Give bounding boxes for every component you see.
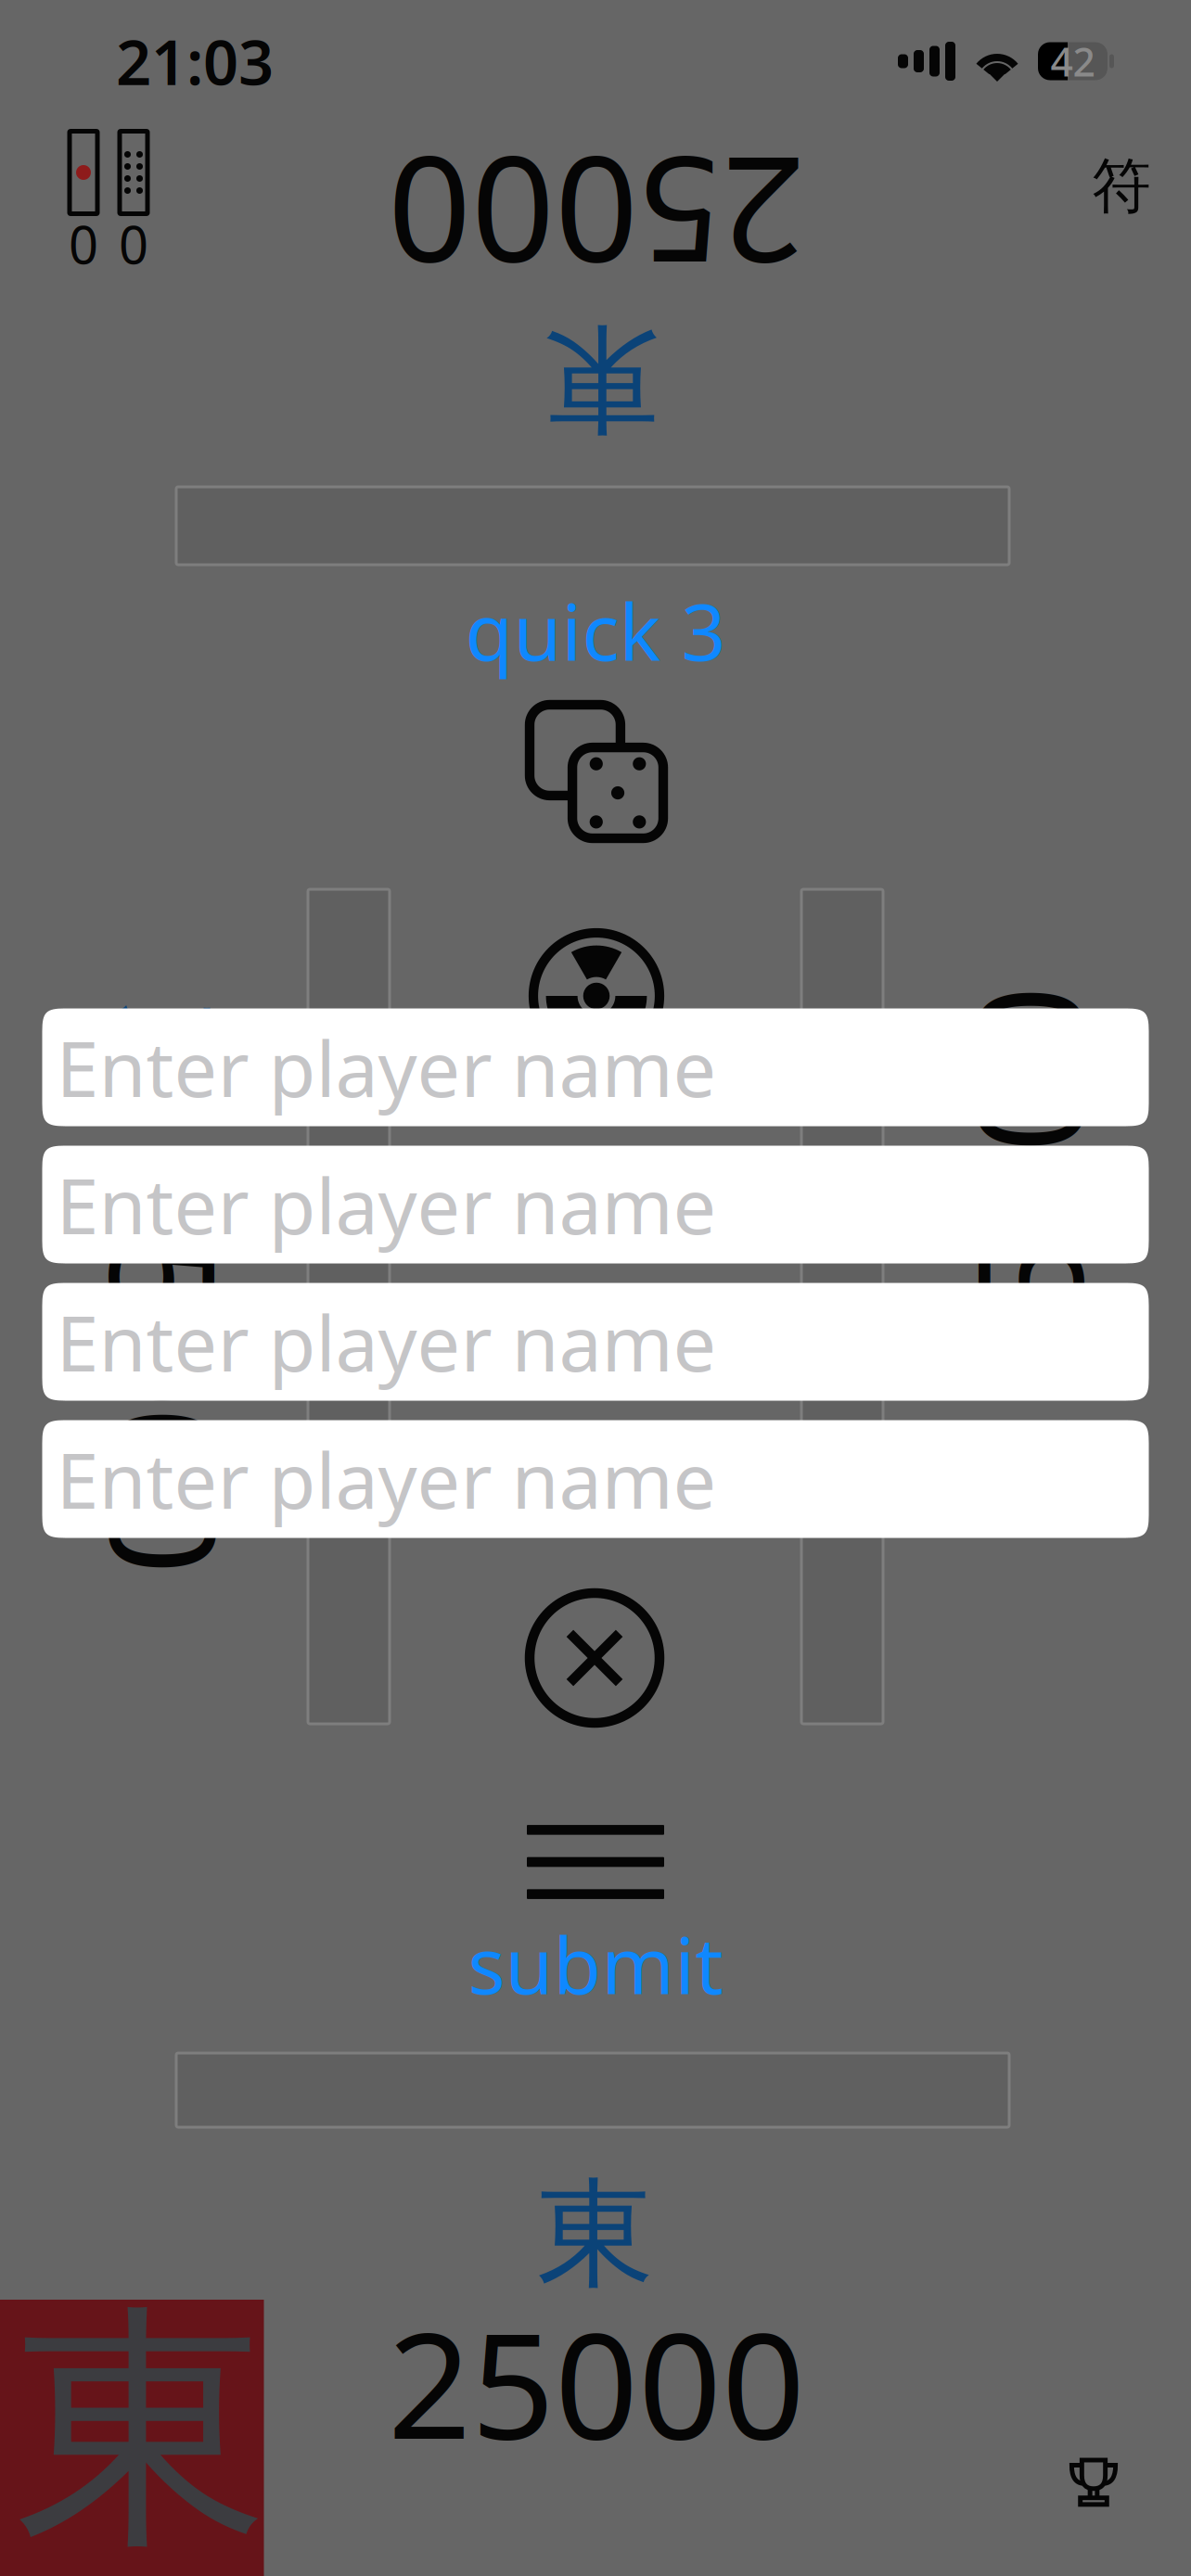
staticText: Enter player name [56, 1016, 717, 1118]
staticText: 25000 [0, 1269, 376, 1463]
button[interactable]: Enter player name [42, 1146, 1149, 1263]
button[interactable]: Fu [1077, 142, 1166, 231]
staticText: 25000 [817, 1097, 1191, 1291]
staticText: 東 [108, 990, 226, 1134]
staticText: quick 3 [465, 579, 726, 682]
button[interactable]: submit [468, 1919, 723, 2009]
staticText: submit [468, 1912, 723, 2016]
staticText: 25000 [388, 117, 805, 311]
button[interactable]: quick 3 [465, 586, 726, 675]
staticText: 25000 [388, 2285, 805, 2479]
button[interactable]: Enter player name [42, 1420, 1149, 1538]
button[interactable]: Roll dice [530, 705, 663, 838]
staticText: 東 [541, 306, 659, 450]
staticText: 42 [1050, 35, 1095, 88]
staticText: 符 [1092, 150, 1151, 223]
staticText: Enter player name [56, 1428, 717, 1530]
staticText: 0 [119, 209, 148, 278]
staticText: 21:03 [116, 20, 274, 102]
staticText: Enter player name [56, 1154, 717, 1255]
staticText: Enter player name [56, 1291, 717, 1393]
button[interactable]: Enter player name [42, 1008, 1149, 1126]
staticText: 0 [69, 209, 98, 278]
button[interactable]: Enter player name [42, 1283, 1149, 1401]
button[interactable]: Cancel hand [530, 1593, 660, 1723]
button[interactable]: Leaderboard [1068, 2455, 1119, 2506]
button[interactable]: Menu [527, 1825, 664, 1899]
staticText: 東 [967, 1401, 1085, 1546]
staticText: 東 [537, 2163, 654, 2307]
staticText: 東 [14, 2275, 269, 2576]
